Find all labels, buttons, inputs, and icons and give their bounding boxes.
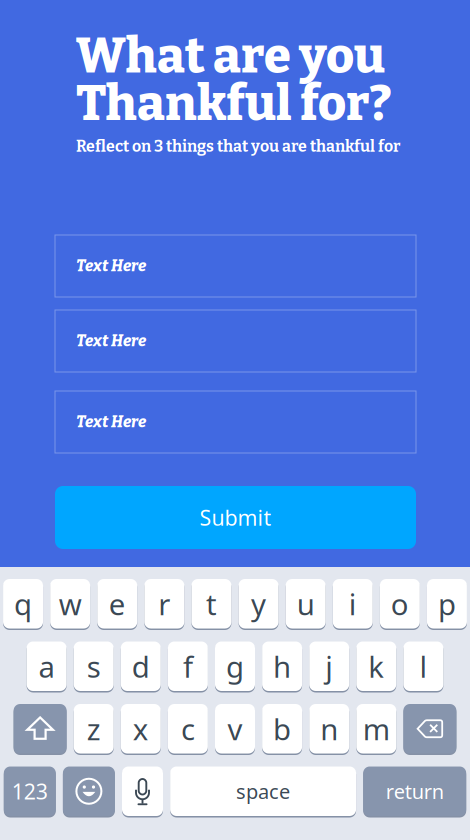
button[interactable]: w [50, 578, 90, 629]
staticText: f [183, 647, 193, 686]
staticText: e [109, 584, 126, 623]
staticText: w [59, 584, 82, 623]
button[interactable]: d [121, 640, 161, 692]
staticText: i [349, 584, 357, 623]
staticText: m [363, 709, 390, 748]
staticText: k [368, 647, 384, 686]
staticText: Text Here [76, 257, 146, 275]
button[interactable]: q [3, 578, 43, 629]
staticText: return [386, 778, 444, 805]
button[interactable]: Text Here [55, 391, 416, 453]
button[interactable]: k [356, 640, 396, 692]
staticText: n [320, 709, 338, 748]
staticText: g [226, 647, 244, 686]
staticText: p [438, 584, 456, 623]
button[interactable]: t [191, 578, 231, 629]
button[interactable]: n [309, 703, 349, 754]
button[interactable]: Text Here [55, 235, 416, 297]
button[interactable]: space [170, 765, 356, 817]
button[interactable]: b [262, 703, 302, 754]
staticText: space [236, 778, 290, 805]
staticText: y [251, 584, 266, 623]
button[interactable]: j [309, 640, 349, 692]
staticText: d [132, 647, 150, 686]
staticText: Text Here [76, 332, 146, 350]
staticText: u [297, 584, 315, 623]
staticText: What are you [76, 27, 385, 85]
staticText: l [419, 647, 427, 686]
staticText: o [391, 584, 409, 623]
button[interactable]: Emoji [63, 765, 115, 817]
button[interactable]: return [363, 765, 466, 817]
button[interactable]: h [262, 640, 302, 692]
staticText: s [87, 647, 101, 686]
staticText: q [14, 584, 32, 623]
button[interactable]: l [403, 640, 443, 692]
button[interactable]: o [380, 578, 420, 629]
button[interactable]: r [144, 578, 184, 629]
staticText: v [227, 709, 242, 748]
button[interactable]: i [333, 578, 373, 629]
staticText: Submit [199, 503, 271, 532]
staticText: j [325, 647, 333, 686]
button[interactable]: Delete [403, 703, 456, 754]
button[interactable]: Dictation [122, 765, 163, 817]
button[interactable]: x [121, 703, 161, 754]
button[interactable]: Submit [55, 486, 416, 549]
staticText: b [273, 709, 291, 748]
staticText: Thankful for? [76, 74, 392, 133]
button[interactable]: m [356, 703, 396, 754]
staticText: t [206, 584, 217, 623]
button[interactable]: z [74, 703, 114, 754]
button[interactable]: Shift [14, 703, 67, 754]
staticText: r [158, 584, 170, 623]
button[interactable]: v [215, 703, 255, 754]
button[interactable]: u [286, 578, 326, 629]
button[interactable]: y [239, 578, 279, 629]
staticText: Text Here [76, 413, 146, 431]
staticText: z [87, 709, 101, 748]
staticText: h [273, 647, 291, 686]
staticText: 123 [12, 777, 48, 805]
button[interactable]: 123 [4, 765, 56, 817]
button[interactable]: p [427, 578, 467, 629]
button[interactable]: s [74, 640, 114, 692]
button[interactable]: Text Here [55, 310, 416, 372]
staticText: a [39, 647, 55, 686]
button[interactable]: e [97, 578, 137, 629]
button[interactable]: f [168, 640, 208, 692]
staticText: c [181, 709, 195, 748]
staticText: Reflect on 3 things that you are thankfu… [76, 137, 400, 156]
button[interactable]: c [168, 703, 208, 754]
button[interactable]: g [215, 640, 255, 692]
staticText: x [133, 709, 149, 748]
button[interactable]: a [27, 640, 67, 692]
